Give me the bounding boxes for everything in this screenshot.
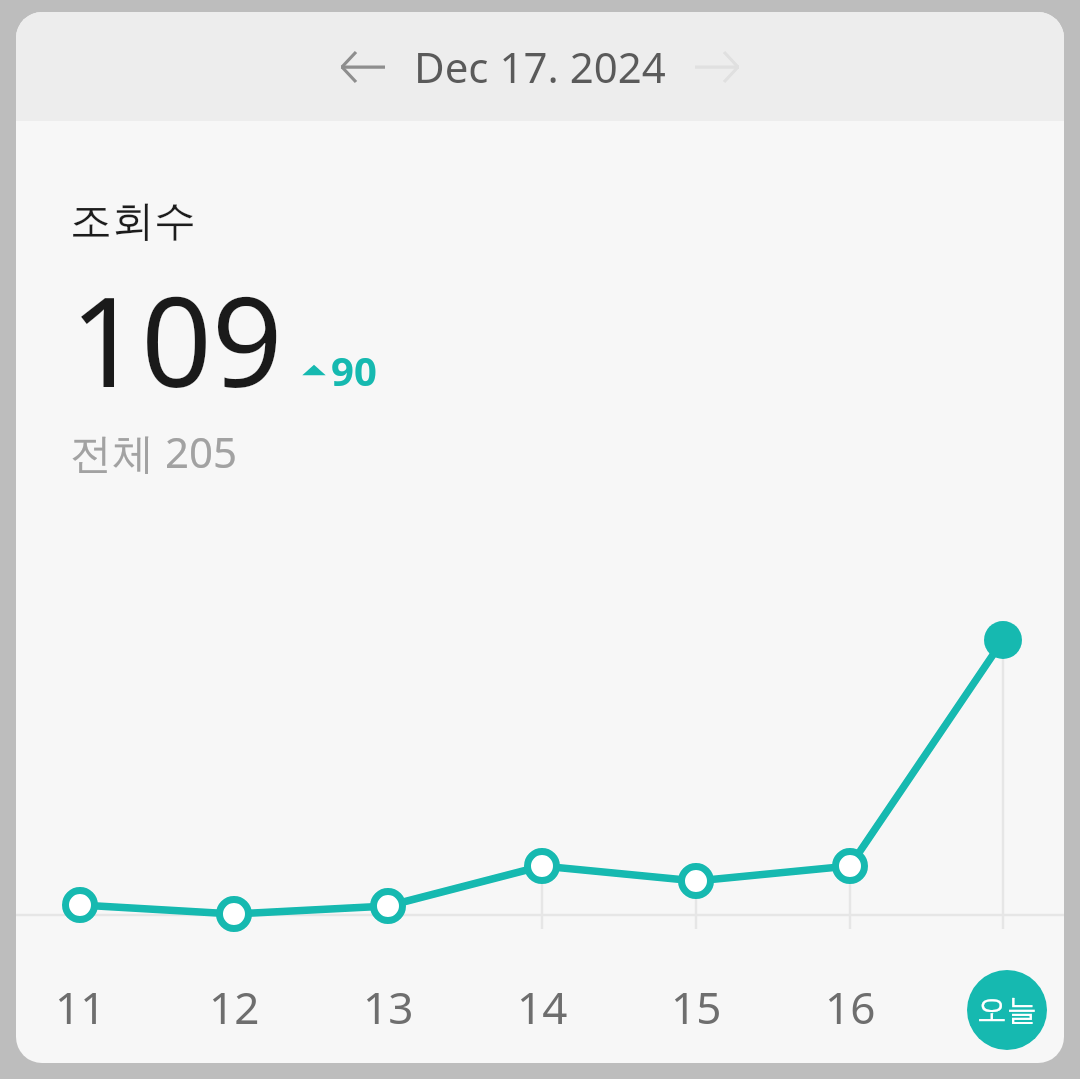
staticText: 16 <box>825 977 876 1037</box>
staticText: Dec 17. 2024 <box>414 38 666 95</box>
staticText: 14 <box>517 977 568 1037</box>
staticText: 13 <box>363 977 414 1037</box>
staticText: 조회수 <box>70 195 196 248</box>
staticText: 109 <box>70 254 283 423</box>
staticText: 오늘 <box>977 991 1037 1029</box>
button[interactable]: 오늘 <box>967 970 1047 1050</box>
staticText: 12 <box>209 977 260 1037</box>
staticText: 전체 205 <box>70 423 237 480</box>
staticText: 15 <box>671 977 722 1037</box>
staticText: 11 <box>55 977 106 1037</box>
button[interactable]: Previous day <box>322 26 404 108</box>
staticText: 90 <box>331 343 377 397</box>
